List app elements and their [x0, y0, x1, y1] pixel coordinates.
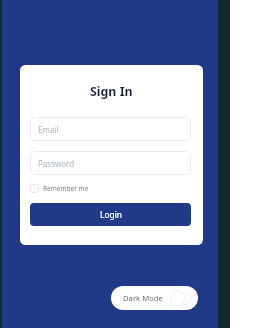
button[interactable]: Password: [30, 151, 191, 175]
staticText: Remember me: [43, 184, 89, 193]
button[interactable]: Remember me: [30, 183, 89, 194]
staticText: Login: [100, 209, 122, 220]
other: Toggle dark mode: [170, 291, 192, 306]
staticText: Dark Mode: [123, 293, 163, 303]
staticText: Password: [38, 158, 75, 169]
staticText: Sign In: [90, 83, 133, 100]
button[interactable]: Dark Mode: [111, 286, 198, 310]
staticText: Email: [38, 124, 59, 135]
button[interactable]: Email: [30, 117, 191, 141]
button[interactable]: Login: [30, 203, 191, 226]
